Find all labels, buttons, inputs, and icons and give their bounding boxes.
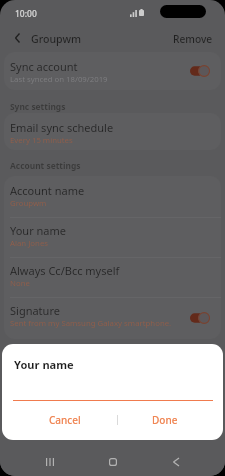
button[interactable]: Account name: [4, 178, 221, 218]
staticText: Signature: [10, 303, 60, 318]
button[interactable]: Always Cc/Bcc myself: [4, 258, 221, 298]
button[interactable]: Sync account: [4, 52, 221, 90]
staticText: Email sync schedule: [10, 120, 114, 135]
staticText: Your name: [10, 223, 66, 238]
staticText: Account settings: [10, 160, 81, 171]
staticText: None: [10, 278, 30, 289]
staticText: Sent from my Samsung Galaxy smartphone.: [10, 318, 172, 329]
button[interactable]: Recent apps: [18, 440, 81, 476]
staticText: Groupwm: [10, 198, 47, 209]
staticText: Every 15 minutes: [10, 135, 73, 146]
staticText: Groupwm: [31, 32, 82, 46]
staticText: Cancel: [49, 413, 81, 427]
staticText: Sync settings: [10, 101, 66, 112]
staticText: Remove: [173, 32, 213, 46]
button[interactable]: Back: [144, 440, 207, 476]
staticText: Sync account: [10, 59, 78, 74]
button[interactable]: Remove: [167, 24, 219, 52]
staticText: 10:00: [15, 8, 37, 20]
button[interactable]: Home: [81, 440, 144, 476]
button[interactable]: Cancel: [13, 406, 117, 434]
staticText: Account name: [10, 183, 85, 198]
button[interactable]: Email sync schedule: [4, 113, 221, 150]
staticText: Alan Jones: [10, 238, 49, 249]
button[interactable]: Signature: [4, 298, 221, 338]
staticText: Last synced on 18/09/2019: [10, 74, 108, 85]
staticText: Always Cc/Bcc myself: [10, 263, 120, 278]
button[interactable]: Your name: [4, 218, 221, 258]
staticText: Done: [152, 413, 178, 427]
button[interactable]: Done: [118, 406, 212, 434]
staticText: Your name: [14, 357, 74, 372]
button[interactable]: Navigate up: [5, 24, 29, 52]
